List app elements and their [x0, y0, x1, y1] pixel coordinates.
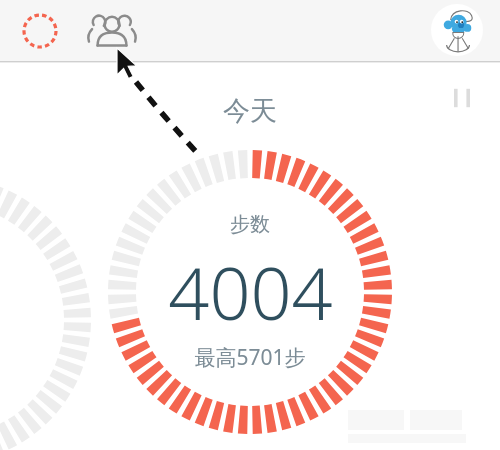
- staticText: 4004: [168, 243, 333, 341]
- staticText: 今天: [223, 94, 277, 128]
- staticText: 最高5701步: [194, 343, 306, 372]
- staticText: 步数: [230, 212, 270, 237]
- button[interactable]: Pause: [442, 78, 482, 118]
- button[interactable]: Friends: [88, 7, 136, 55]
- button[interactable]: Activity ring: [18, 9, 62, 53]
- button[interactable]: Profile: [431, 4, 483, 56]
